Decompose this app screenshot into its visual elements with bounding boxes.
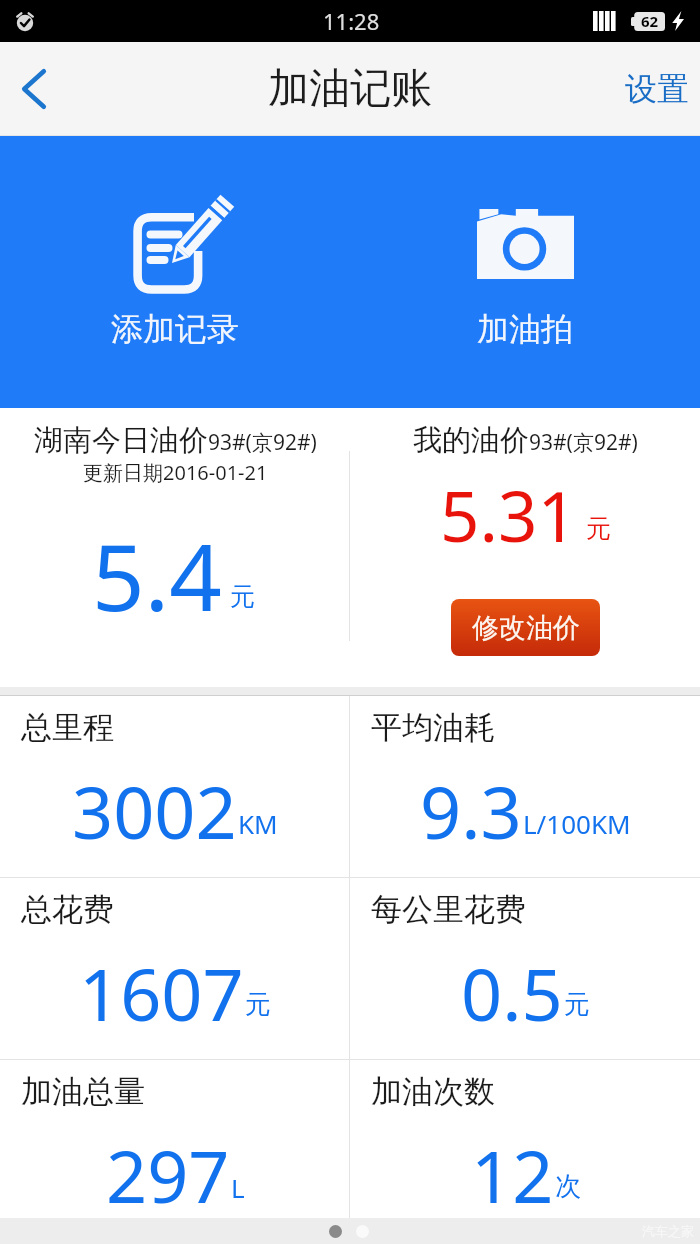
staticText: 元 <box>245 988 271 1021</box>
staticText: 93#(京92#) <box>208 428 317 457</box>
button[interactable]: 总花费 <box>0 878 349 1059</box>
staticText: 加油次数 <box>371 1072 495 1111</box>
button[interactable]: 加油拍 <box>350 136 700 408</box>
staticText: 湖南今日油价 <box>34 422 208 459</box>
button[interactable]: Back <box>0 42 72 136</box>
staticText: 汽车之家 <box>642 1223 694 1239</box>
button[interactable]: 加油次数 <box>350 1060 700 1218</box>
staticText: 加油拍 <box>477 309 573 349</box>
staticText: 5.4 <box>92 513 222 638</box>
staticText: 加油记账 <box>268 63 432 115</box>
button[interactable]: 每公里花费 <box>350 878 700 1059</box>
staticText: 次 <box>555 1170 581 1203</box>
staticText: L <box>231 1170 245 1205</box>
button[interactable]: 添加记录 <box>0 136 350 408</box>
staticText: 总花费 <box>21 890 114 929</box>
staticText: 11:28 <box>323 6 380 36</box>
staticText: 每公里花费 <box>371 890 526 929</box>
staticText: 修改油价 <box>472 611 580 645</box>
button[interactable]: 修改油价 <box>451 599 600 656</box>
staticText: 元 <box>564 988 590 1021</box>
staticText: 我的油价 <box>413 422 529 459</box>
staticText: 0.5 <box>461 944 563 1042</box>
staticText: L/100KM <box>523 806 631 841</box>
staticText: 1607 <box>79 944 244 1042</box>
button[interactable]: 平均油耗 <box>350 696 700 877</box>
staticText: 62 <box>641 11 659 31</box>
staticText: 更新日期2016-01-21 <box>83 459 268 486</box>
button[interactable]: Page 2 <box>356 1225 369 1238</box>
staticText: 12 <box>471 1126 554 1218</box>
staticText: 平均油耗 <box>371 708 495 747</box>
button[interactable]: 总里程 <box>0 696 349 877</box>
staticText: 添加记录 <box>111 309 239 349</box>
staticText: 9.3 <box>420 762 522 860</box>
staticText: 元 <box>586 513 611 544</box>
staticText: 元 <box>230 581 255 612</box>
staticText: 设置 <box>625 69 689 109</box>
button[interactable]: 设置 <box>604 42 700 136</box>
staticText: KM <box>238 806 278 841</box>
staticText: 5.31 <box>440 468 577 562</box>
button[interactable]: 湖南今日油价 <box>0 408 350 687</box>
staticText: 总里程 <box>21 708 114 747</box>
button[interactable]: 加油总量 <box>0 1060 349 1218</box>
button[interactable]: Page 1 <box>329 1225 342 1238</box>
staticText: 3002 <box>72 762 237 860</box>
staticText: 297 <box>106 1126 230 1218</box>
staticText: 加油总量 <box>21 1072 145 1111</box>
staticText: 93#(京92#) <box>529 428 638 457</box>
